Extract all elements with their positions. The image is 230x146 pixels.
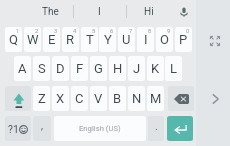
staticText: The xyxy=(42,6,59,18)
staticText: P xyxy=(179,32,188,47)
staticText: R xyxy=(66,32,75,47)
button[interactable]: D xyxy=(52,56,69,81)
staticText: ?1 xyxy=(8,123,19,135)
button[interactable]: H xyxy=(109,56,126,81)
button[interactable]: I xyxy=(73,0,126,23)
button[interactable]: F xyxy=(71,56,88,81)
staticText: 4 xyxy=(73,28,77,35)
staticText: H xyxy=(113,61,123,76)
button[interactable]: V xyxy=(90,86,107,111)
staticText: I xyxy=(98,6,101,18)
button[interactable]: M xyxy=(147,86,164,111)
staticText: Hi xyxy=(144,6,154,18)
staticText: , xyxy=(41,120,43,132)
button[interactable]: U xyxy=(118,27,135,52)
button[interactable]: Y xyxy=(99,27,116,52)
staticText: 6 xyxy=(110,28,114,35)
button[interactable]: Hi xyxy=(126,0,171,23)
staticText: T xyxy=(86,32,94,47)
staticText: E xyxy=(48,32,56,47)
button[interactable]: Backspace xyxy=(168,86,194,111)
button[interactable]: A xyxy=(14,56,31,81)
staticText: A xyxy=(18,61,27,76)
staticText: M xyxy=(150,91,162,106)
staticText: I xyxy=(144,32,148,47)
staticText: 5 xyxy=(92,28,96,35)
button[interactable]: L xyxy=(165,56,182,81)
staticText: U xyxy=(122,32,131,47)
button[interactable]: S xyxy=(33,56,50,81)
button[interactable]: I xyxy=(137,27,154,52)
staticText: V xyxy=(94,91,103,106)
button[interactable]: Expand keyboard xyxy=(205,31,225,51)
staticText: S xyxy=(38,61,46,76)
button[interactable]: Symbols and emoji xyxy=(5,116,31,141)
staticText: . xyxy=(155,121,158,133)
button[interactable]: Shift xyxy=(5,86,31,111)
staticText: B xyxy=(113,91,122,106)
button[interactable]: T xyxy=(81,27,98,52)
button[interactable]: W xyxy=(24,27,41,52)
staticText: X xyxy=(56,91,65,106)
button[interactable]: R xyxy=(62,27,79,52)
staticText: 1 xyxy=(16,28,20,35)
staticText: 9 xyxy=(167,28,171,35)
staticText: N xyxy=(132,91,142,106)
button[interactable]: , xyxy=(33,116,51,141)
button[interactable]: P xyxy=(175,27,192,52)
button[interactable]: Enter xyxy=(167,116,193,141)
staticText: Q xyxy=(9,32,18,47)
staticText: F xyxy=(76,61,84,76)
staticText: D xyxy=(56,61,65,76)
staticText: W xyxy=(27,32,39,47)
button[interactable]: B xyxy=(109,86,126,111)
button[interactable]: Z xyxy=(33,86,50,111)
staticText: 8 xyxy=(148,28,152,35)
button[interactable]: Space, English (US) xyxy=(54,116,146,141)
button[interactable]: E xyxy=(43,27,60,52)
staticText: 7 xyxy=(129,28,133,35)
staticText: K xyxy=(151,61,160,76)
button[interactable]: N xyxy=(128,86,145,111)
button[interactable]: The xyxy=(28,0,73,23)
button[interactable]: O xyxy=(156,27,173,52)
staticText: Y xyxy=(104,32,112,47)
button[interactable]: Voice input xyxy=(174,2,193,21)
staticText: C xyxy=(75,91,84,106)
button[interactable]: C xyxy=(71,86,88,111)
button[interactable]: Q xyxy=(5,27,22,52)
staticText: 0 xyxy=(186,28,190,35)
button[interactable]: J xyxy=(128,56,145,81)
button[interactable]: . xyxy=(148,116,164,141)
staticText: G xyxy=(94,61,103,76)
staticText: 3 xyxy=(54,28,58,35)
button[interactable]: X xyxy=(52,86,69,111)
staticText: English (US) xyxy=(79,124,121,133)
staticText: J xyxy=(133,61,141,76)
button[interactable]: G xyxy=(90,56,107,81)
staticText: O xyxy=(160,32,169,47)
button[interactable]: K xyxy=(147,56,164,81)
staticText: Z xyxy=(38,91,46,106)
staticText: 2 xyxy=(35,28,39,35)
button[interactable]: Next xyxy=(205,89,225,109)
staticText: L xyxy=(170,61,178,76)
